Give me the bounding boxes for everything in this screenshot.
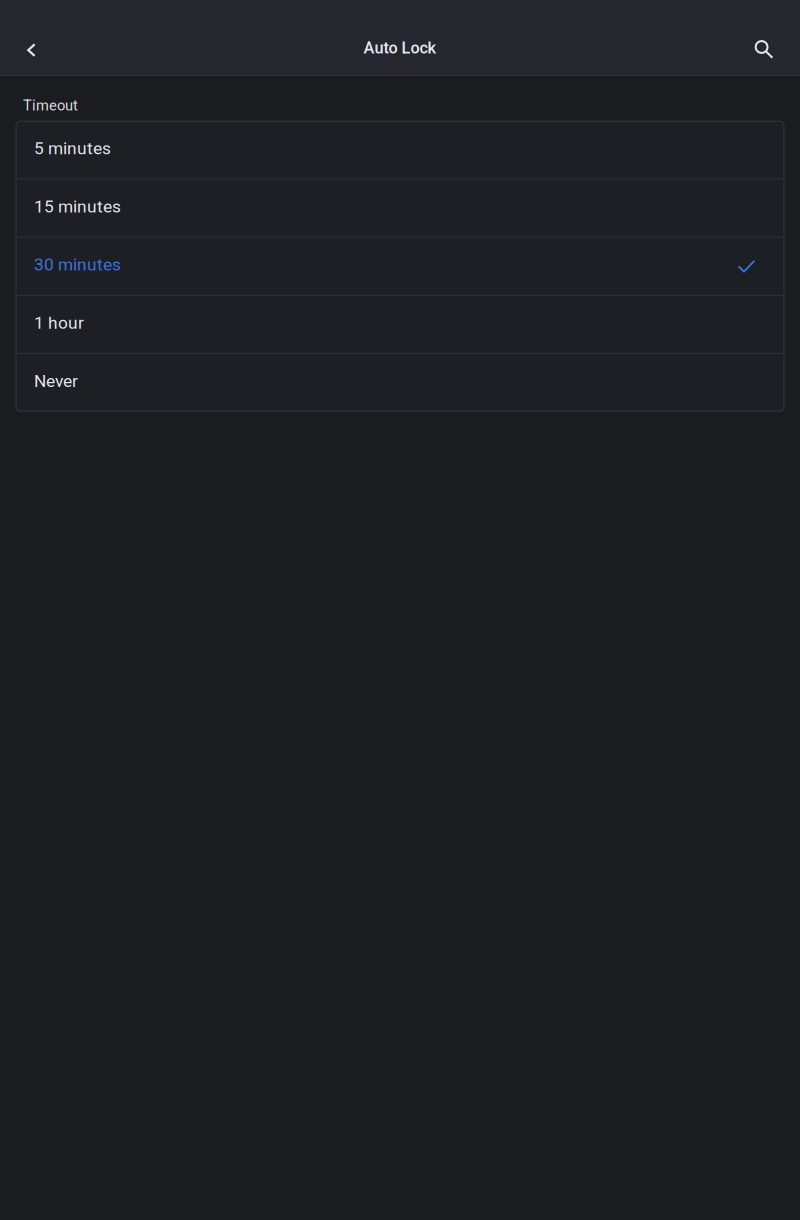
button[interactable]: 30 minutes bbox=[16, 238, 784, 295]
button[interactable]: Never bbox=[16, 354, 784, 411]
button[interactable]: Search bbox=[738, 24, 786, 72]
staticText: 1 hour bbox=[34, 313, 84, 333]
button[interactable]: 5 minutes bbox=[16, 121, 784, 178]
button[interactable]: 1 hour bbox=[16, 296, 784, 353]
staticText: Auto Lock bbox=[363, 38, 436, 58]
staticText: 15 minutes bbox=[34, 196, 121, 217]
staticText: 5 minutes bbox=[34, 138, 111, 158]
staticText: 30 minutes bbox=[34, 254, 121, 275]
staticText: Timeout bbox=[23, 97, 78, 114]
staticText: Never bbox=[34, 371, 78, 391]
button[interactable]: Back bbox=[7, 24, 55, 72]
button[interactable]: 15 minutes bbox=[16, 179, 784, 237]
